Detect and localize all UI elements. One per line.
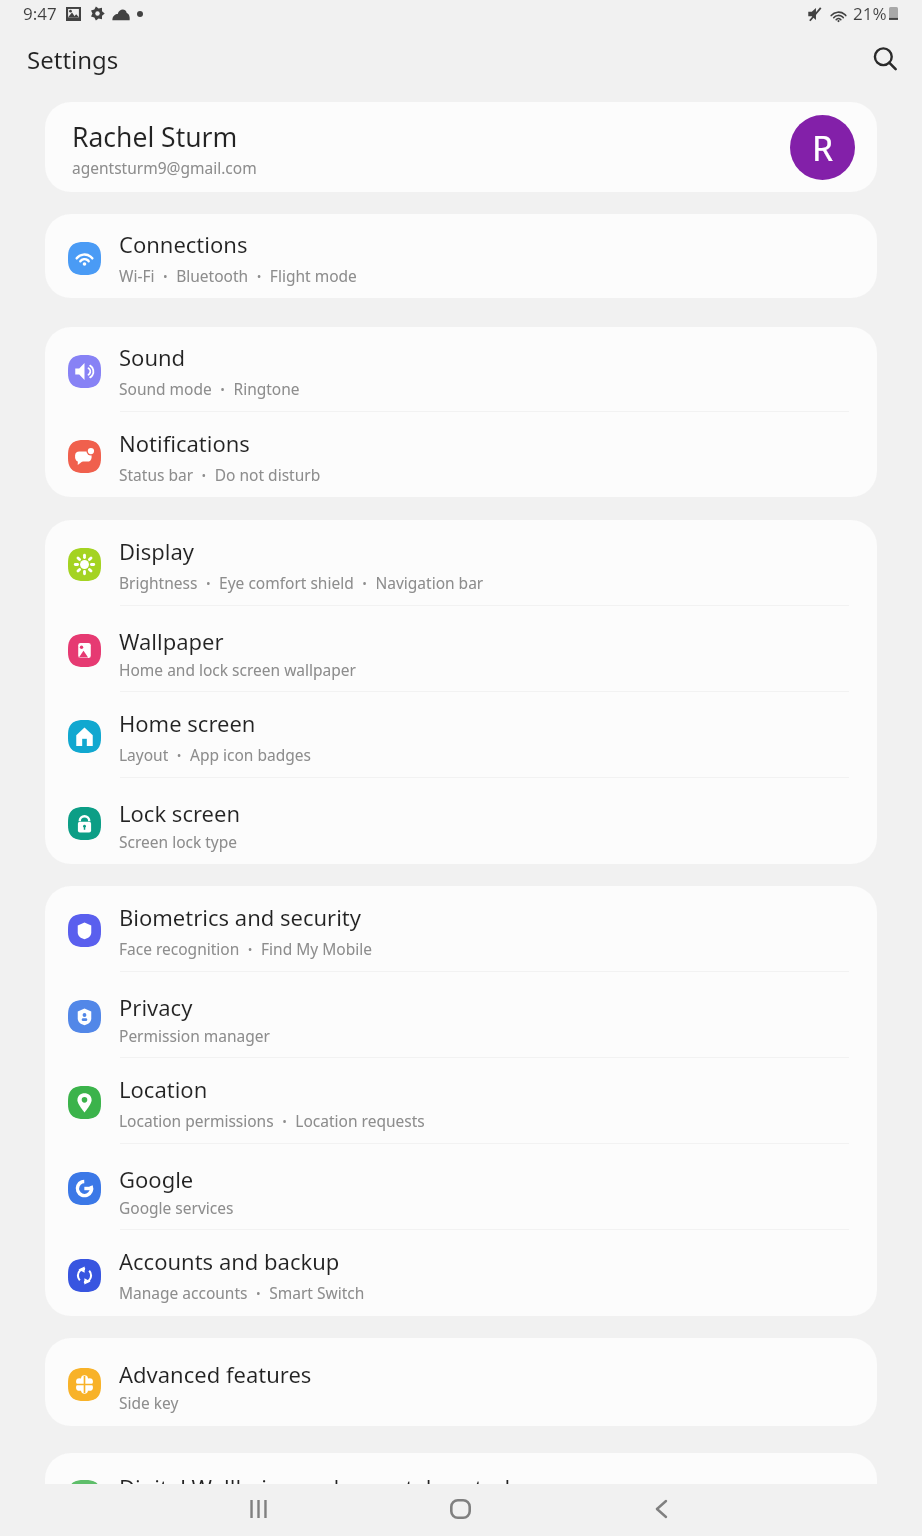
staticText: Google: [119, 1164, 194, 1194]
staticText: Status bar · Do not disturb: [119, 461, 321, 490]
button[interactable]: Biometrics and security: [45, 886, 877, 971]
button[interactable]: Digital Wellbeing and parental controls: [45, 1453, 877, 1536]
staticText: Wi-Fi · Bluetooth · Flight mode: [119, 262, 357, 291]
staticText: Manage accounts · Smart Switch: [119, 1279, 365, 1308]
staticText: agentsturm9@gmail.com: [72, 157, 257, 178]
staticText: Brightness · Eye comfort shield · Naviga…: [119, 569, 484, 598]
staticText: Sound mode · Ringtone: [119, 375, 300, 404]
staticText: Home screen: [119, 708, 256, 738]
staticText: Rachel Sturm: [72, 119, 238, 155]
staticText: Screen lock type: [119, 831, 238, 852]
staticText: Settings: [27, 43, 119, 76]
button[interactable]: Home screen: [45, 692, 877, 777]
button[interactable]: Google: [45, 1144, 877, 1229]
staticText: Notifications: [119, 428, 250, 458]
staticText: Location permissions · Location requests: [119, 1107, 425, 1136]
button[interactable]: Accounts and backup: [45, 1230, 877, 1316]
button[interactable]: Notifications: [45, 412, 877, 497]
staticText: Face recognition · Find My Mobile: [119, 935, 372, 964]
staticText: Location: [119, 1074, 208, 1104]
button[interactable]: Location: [45, 1058, 877, 1143]
button[interactable]: Search: [862, 36, 908, 82]
button[interactable]: Recents: [226, 1483, 290, 1535]
staticText: Lock screen: [119, 798, 241, 828]
button[interactable]: Display: [45, 520, 877, 605]
staticText: Google services: [119, 1197, 234, 1218]
staticText: 9:47: [23, 2, 57, 25]
button[interactable]: Wallpaper: [45, 606, 877, 691]
button[interactable]: Sound: [45, 327, 877, 411]
button[interactable]: Advanced features: [45, 1338, 877, 1426]
button[interactable]: Rachel Sturm: [45, 102, 877, 192]
staticText: Biometrics and security: [119, 902, 362, 932]
staticText: Connections: [119, 229, 248, 259]
button[interactable]: Connections: [45, 214, 877, 298]
staticText: Accounts and backup: [119, 1246, 340, 1276]
button[interactable]: Lock screen: [45, 778, 877, 864]
staticText: Sound: [119, 342, 186, 372]
staticText: Layout · App icon badges: [119, 741, 311, 770]
button[interactable]: Home: [428, 1483, 492, 1535]
staticText: Digital Wellbeing and parental controls: [119, 1472, 521, 1502]
staticText: Advanced features: [119, 1359, 312, 1389]
staticText: Privacy: [119, 992, 193, 1022]
staticText: Display: [119, 536, 195, 566]
staticText: R: [812, 125, 834, 171]
staticText: 21%: [853, 2, 887, 25]
button[interactable]: Privacy: [45, 972, 877, 1057]
button[interactable]: Back: [629, 1483, 693, 1535]
staticText: Side key: [119, 1392, 179, 1413]
staticText: Wallpaper: [119, 626, 224, 656]
staticText: Permission manager: [119, 1025, 270, 1046]
staticText: Home and lock screen wallpaper: [119, 659, 356, 680]
